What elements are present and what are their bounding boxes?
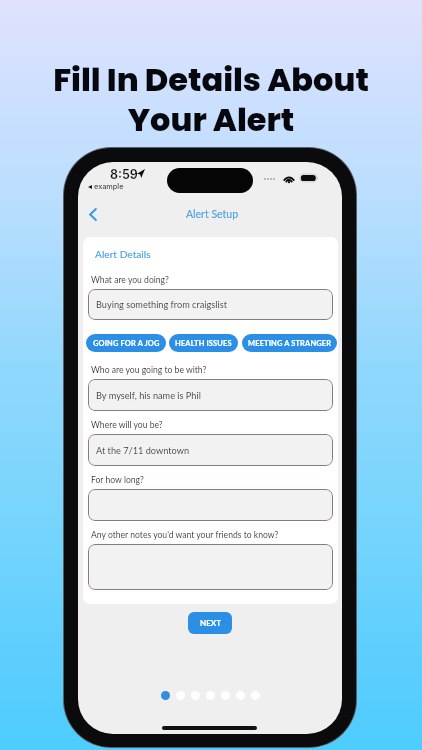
staticText: MEETING A STRANGER <box>248 339 332 348</box>
button[interactable]: At the 7/11 downtown <box>88 434 333 466</box>
staticText: Alert Details <box>95 248 151 260</box>
button[interactable]: MEETING A STRANGER <box>242 334 337 352</box>
staticText: example <box>94 182 124 191</box>
staticText: For how long? <box>91 475 144 485</box>
button[interactable]: GOING FOR A JOG <box>86 334 166 352</box>
staticText: Alert Setup <box>186 208 239 221</box>
button[interactable]: By myself, his name is Phil <box>88 379 333 411</box>
button[interactable]: Buying something from craigslist <box>88 289 333 320</box>
staticText: By myself, his name is Phil <box>96 390 201 401</box>
button[interactable]: HEALTH ISSUES <box>169 334 238 352</box>
staticText: GOING FOR A JOG <box>93 339 160 348</box>
staticText: 8:59 <box>110 167 138 182</box>
staticText: NEXT <box>200 618 221 628</box>
button[interactable]: Back <box>81 202 105 226</box>
button[interactable]: Page 2 <box>176 691 185 700</box>
button[interactable]: Page 6 <box>236 691 245 700</box>
button[interactable]: Page 1 <box>161 691 170 700</box>
staticText: Who are you going to be with? <box>91 365 207 375</box>
button[interactable] <box>88 544 333 590</box>
staticText: Any other notes you'd want your friends … <box>91 530 279 540</box>
button[interactable] <box>88 489 333 521</box>
button[interactable]: Page 4 <box>206 691 215 700</box>
staticText: Buying something from craigslist <box>96 299 227 310</box>
button[interactable]: Page 7 <box>251 691 260 700</box>
staticText: Where will you be? <box>91 420 163 430</box>
staticText: At the 7/11 downtown <box>96 445 190 456</box>
staticText: HEALTH ISSUES <box>175 339 232 348</box>
staticText: Fill In Details About Your Alert <box>0 57 422 142</box>
button[interactable]: Page 5 <box>221 691 230 700</box>
button[interactable]: Page 3 <box>191 691 200 700</box>
button[interactable]: NEXT <box>188 612 232 634</box>
staticText: What are you doing? <box>91 275 169 285</box>
